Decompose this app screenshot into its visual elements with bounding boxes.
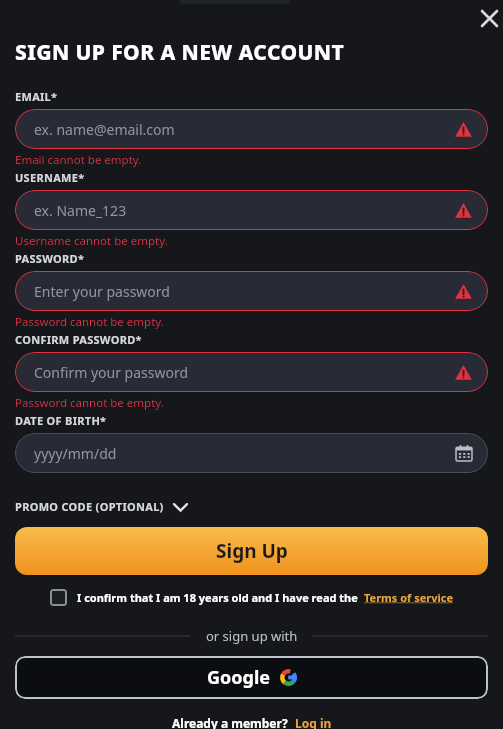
staticText: DATE OF BIRTH* bbox=[15, 413, 107, 428]
button[interactable]: Sign Up bbox=[15, 527, 488, 575]
button[interactable]: Terms of service bbox=[364, 590, 453, 605]
staticText: PASSWORD* bbox=[15, 251, 85, 266]
staticText: I confirm that I am 18 years old and I h… bbox=[77, 590, 358, 605]
staticText: PROMO CODE (OPTIONAL) bbox=[15, 499, 164, 514]
staticText: Password cannot be empty. bbox=[15, 314, 164, 330]
staticText: yyyy/mm/dd bbox=[34, 444, 117, 463]
button[interactable]: Confirm your password bbox=[15, 352, 488, 392]
button[interactable]: PROMO CODE (OPTIONAL) bbox=[15, 499, 188, 514]
staticText: Username cannot be empty. bbox=[15, 233, 168, 249]
staticText: EMAIL* bbox=[15, 89, 58, 104]
staticText: ex. Name_123 bbox=[34, 201, 127, 220]
staticText: CONFIRM PASSWORD* bbox=[15, 332, 142, 347]
button[interactable]: Close bbox=[473, 2, 503, 34]
button[interactable]: yyyy/mm/dd bbox=[15, 433, 488, 473]
staticText: SIGN UP FOR A NEW ACCOUNT bbox=[15, 38, 345, 67]
staticText: Sign Up bbox=[216, 538, 288, 564]
button[interactable]: ex. name@email.com bbox=[15, 109, 488, 149]
staticText: USERNAME* bbox=[15, 170, 85, 185]
button[interactable]: Confirm age and terms bbox=[50, 589, 67, 606]
staticText: Already a member? bbox=[172, 715, 288, 729]
staticText: Confirm your password bbox=[34, 363, 189, 382]
staticText: Enter your password bbox=[34, 282, 170, 301]
button[interactable]: Log in bbox=[295, 715, 332, 729]
staticText: Email cannot be empty. bbox=[15, 152, 142, 168]
staticText: Google bbox=[207, 665, 271, 690]
staticText: ex. name@email.com bbox=[34, 120, 175, 139]
staticText: or sign up with bbox=[206, 627, 298, 645]
staticText: Password cannot be empty. bbox=[15, 395, 164, 411]
button[interactable]: Enter your password bbox=[15, 271, 488, 311]
button[interactable]: ex. Name_123 bbox=[15, 190, 488, 230]
button[interactable]: Google bbox=[15, 656, 488, 699]
